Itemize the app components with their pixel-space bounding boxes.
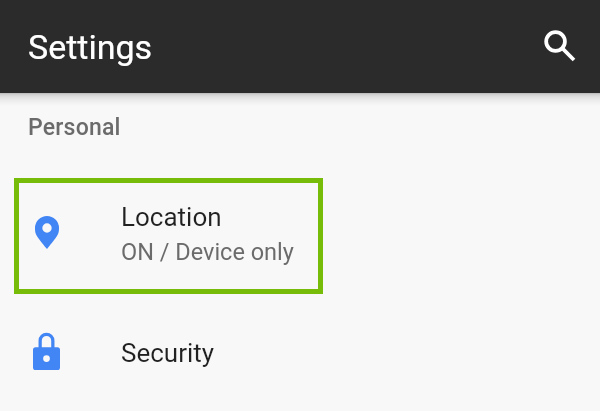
button[interactable]: Location (14, 178, 323, 294)
button[interactable]: Security (0, 310, 600, 398)
staticText: Location (121, 202, 222, 232)
staticText: ON / Device only (121, 238, 294, 266)
staticText: Personal (28, 114, 121, 141)
staticText: Settings (28, 27, 153, 67)
staticText: Security (121, 338, 215, 368)
button[interactable]: Search (535, 21, 583, 69)
